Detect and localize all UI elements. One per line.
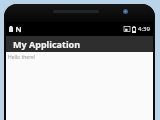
staticText: My Application [13,38,81,50]
staticText: 4:39 [138,25,150,33]
other: Cast [124,26,130,32]
staticText: Hello there! [8,54,36,61]
other: Notification [9,26,13,32]
other: Battery [132,26,136,33]
other: NFC [16,27,21,32]
button[interactable]: My Application [6,36,153,52]
